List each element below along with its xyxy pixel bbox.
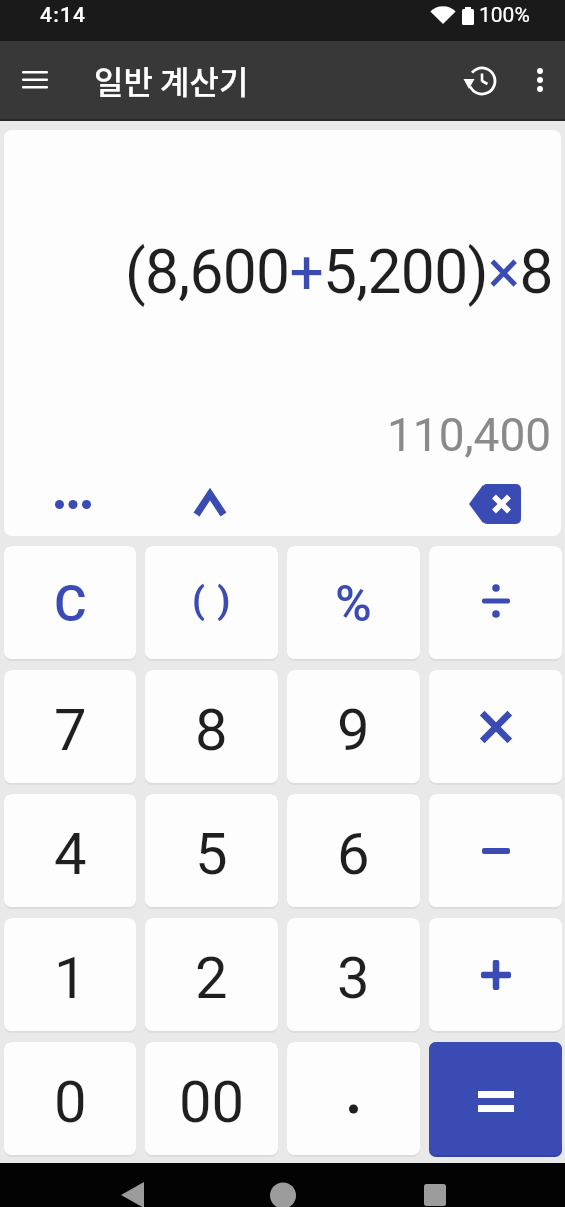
staticText: 8 (195, 696, 228, 764)
button[interactable] (13, 58, 57, 102)
staticText: 100% (479, 3, 530, 28)
button[interactable]: 9 (287, 670, 420, 783)
staticText: 1 (54, 944, 87, 1012)
button[interactable]: 0 (4, 1042, 136, 1155)
button[interactable] (429, 670, 562, 783)
button[interactable] (186, 480, 234, 528)
button[interactable]: 4 (4, 794, 136, 907)
button[interactable] (108, 1163, 158, 1207)
button[interactable]: 00 (145, 1042, 278, 1155)
button[interactable] (410, 1163, 460, 1207)
button[interactable]: 3 (287, 918, 420, 1031)
button[interactable]: 2 (145, 918, 278, 1031)
staticText: 일반 계산기 (94, 57, 249, 103)
staticText: 00 (179, 1068, 245, 1136)
staticText: 9 (337, 696, 370, 764)
staticText: C (54, 575, 87, 634)
staticText: 5 (195, 820, 228, 888)
button[interactable] (258, 1163, 308, 1207)
button[interactable]: 7 (4, 670, 136, 783)
button[interactable] (287, 1042, 420, 1155)
staticText: 110,400 (387, 408, 552, 462)
button[interactable] (429, 1042, 562, 1155)
button[interactable]: ( ) (145, 546, 278, 659)
button[interactable]: 1 (4, 918, 136, 1031)
staticText: 3 (337, 944, 370, 1012)
button[interactable]: 6 (287, 794, 420, 907)
staticText: 4:14 (40, 3, 87, 28)
button[interactable] (520, 60, 560, 100)
staticText: (8,600+5,200)×8 (125, 237, 553, 308)
button[interactable] (429, 794, 562, 907)
button[interactable]: 5 (145, 794, 278, 907)
button[interactable] (48, 482, 98, 526)
staticText: 6 (337, 820, 370, 888)
button[interactable]: 8 (145, 670, 278, 783)
button[interactable]: % (287, 546, 420, 659)
button[interactable] (456, 476, 534, 532)
button[interactable] (429, 546, 562, 659)
staticText: 4 (54, 820, 87, 888)
button[interactable] (429, 918, 562, 1031)
staticText: ( ) (192, 579, 232, 622)
staticText: 7 (54, 696, 87, 764)
staticText: 0 (54, 1068, 87, 1136)
button[interactable]: C (4, 546, 136, 659)
button[interactable] (458, 58, 503, 103)
staticText: % (335, 575, 372, 634)
staticText: 2 (195, 944, 228, 1012)
